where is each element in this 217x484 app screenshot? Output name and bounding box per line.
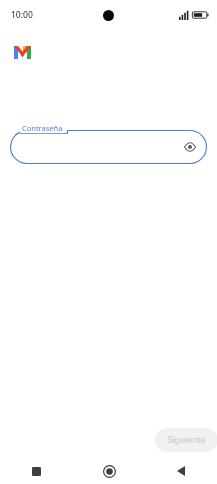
button[interactable]: Inicio	[73, 458, 145, 484]
button[interactable]: Siguiente	[155, 428, 217, 452]
staticText: Siguiente	[167, 434, 206, 446]
staticText: 10:00	[11, 9, 33, 21]
button[interactable]: Atrás	[145, 458, 217, 484]
staticText: Contraseña	[22, 123, 63, 133]
button[interactable]: Mostrar contraseña	[10, 130, 207, 164]
button[interactable]: Recientes	[0, 458, 73, 484]
button[interactable]: Mostrar contraseña	[181, 138, 199, 156]
